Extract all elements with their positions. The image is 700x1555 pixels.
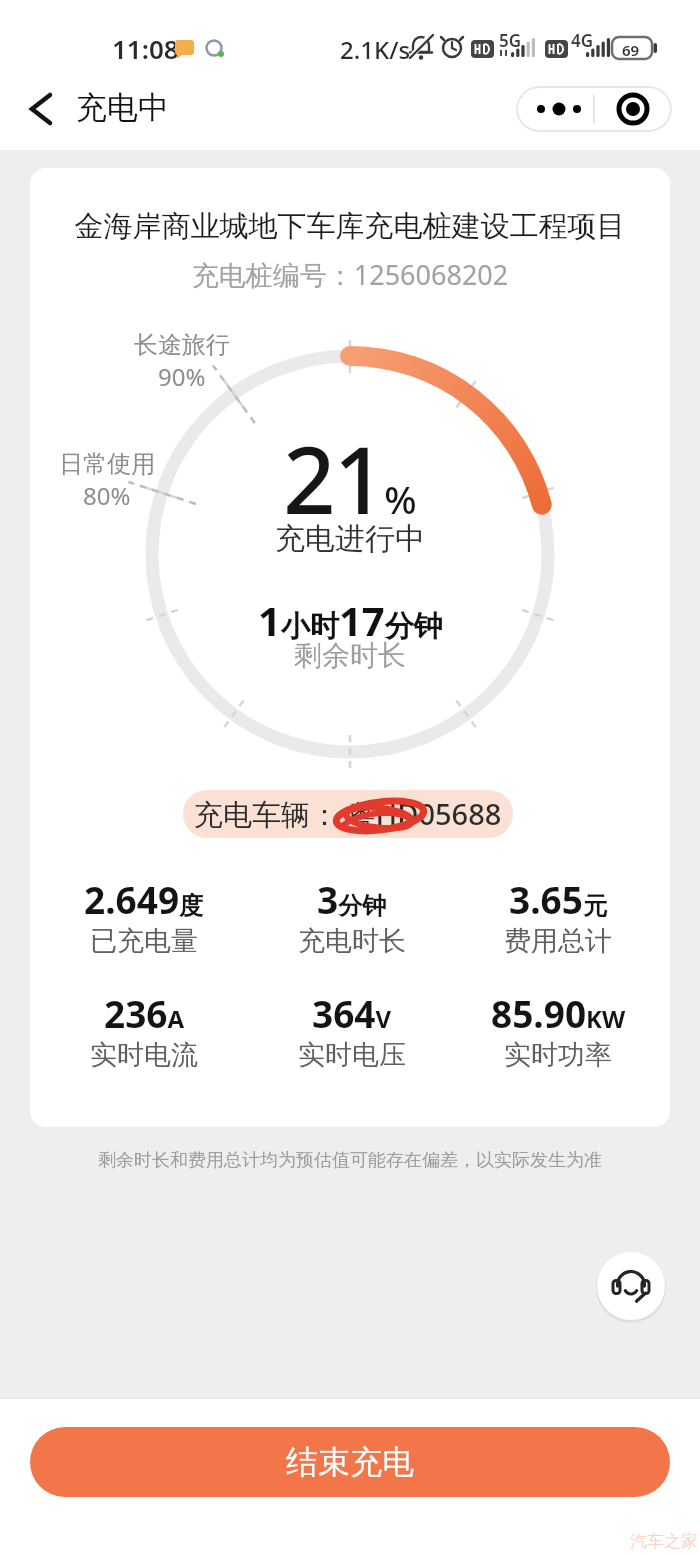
staticText: 充电时长 — [298, 924, 406, 958]
staticText: 4G — [571, 29, 594, 52]
button[interactable] — [597, 1252, 665, 1320]
staticText: 剩余时长和费用总计均为预估值可能存在偏差，以实际发生为准 — [0, 1149, 700, 1172]
staticText: 长途旅行 — [134, 330, 230, 360]
staticText: 21% — [283, 416, 417, 541]
staticText: 充电中 — [76, 88, 169, 127]
staticText: 5G — [499, 29, 522, 52]
staticText: 实时功率 — [504, 1038, 612, 1072]
staticText: 实时电流 — [90, 1038, 198, 1072]
staticText: 费用总计 — [504, 924, 612, 958]
staticText: 1小时17分钟 — [258, 593, 443, 647]
staticText: 充电进行中 — [30, 520, 670, 558]
staticText: 日常使用 — [59, 449, 155, 479]
button[interactable]: 结束充电 — [30, 1427, 670, 1497]
staticText: 2.649度 — [84, 874, 204, 924]
staticText: 85.90KW — [491, 988, 626, 1038]
staticText: 90% — [158, 360, 206, 393]
staticText: 69 — [622, 40, 640, 60]
staticText: 汽车之家 — [630, 1531, 698, 1552]
staticText: 2.1K/s — [340, 33, 411, 66]
staticText: 金海岸商业城地下车库充电桩建设工程项目 — [30, 208, 670, 245]
staticText: 剩余时长 — [30, 638, 670, 673]
staticText: 11:08 — [112, 31, 179, 66]
staticText: 236A — [104, 988, 185, 1038]
staticText: 80% — [83, 479, 131, 512]
staticText: 结束充电 — [286, 1442, 414, 1482]
button[interactable] — [14, 85, 62, 133]
button[interactable] — [516, 86, 672, 132]
staticText: 3.65元 — [509, 874, 607, 924]
staticText: 充电桩编号：1256068202 — [30, 256, 670, 293]
staticText: 充电车辆： 粤HD05688 — [194, 794, 502, 834]
staticText: 364V — [312, 988, 392, 1038]
staticText: 实时电压 — [298, 1038, 406, 1072]
staticText: 3分钟 — [317, 874, 387, 924]
staticText: 已充电量 — [90, 924, 198, 958]
